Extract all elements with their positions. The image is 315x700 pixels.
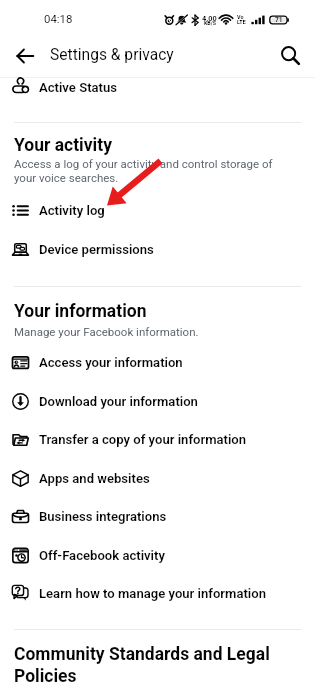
staticText: Access your information — [39, 355, 183, 370]
staticText: Your information — [14, 301, 147, 322]
button[interactable]: Device permissions — [0, 230, 315, 269]
button[interactable]: Apps and websites — [0, 459, 315, 498]
staticText: Learn how to manage your information — [39, 586, 266, 601]
button[interactable]: Activity log — [0, 191, 315, 230]
staticText: 71 — [275, 16, 283, 24]
staticText: Active Status — [39, 80, 118, 95]
staticText: 04:18 — [44, 12, 73, 25]
staticText: KB/S — [204, 20, 216, 26]
staticText: Business integrations — [39, 509, 167, 524]
button[interactable]: Download your information — [0, 382, 315, 421]
button[interactable]: Access your information — [0, 343, 315, 382]
staticText: Manage your Facebook information. — [14, 325, 199, 338]
staticText: Off-Facebook activity — [39, 548, 165, 563]
button[interactable]: Active Status — [0, 78, 315, 122]
staticText: Activity log — [39, 203, 105, 218]
staticText: Access a log of your activity and contro… — [14, 157, 276, 185]
staticText: Vo — [237, 14, 244, 20]
button[interactable]: Back — [6, 37, 43, 74]
staticText: Settings & privacy — [50, 46, 174, 64]
button[interactable]: Transfer a copy of your information — [0, 420, 315, 459]
staticText: Download your information — [39, 394, 198, 409]
staticText: Device permissions — [39, 242, 154, 257]
staticText: Transfer a copy of your information — [39, 432, 247, 447]
staticText: Community Standards and Legal Policies — [14, 644, 286, 686]
staticText: 4.00 — [202, 14, 217, 23]
staticText: LTE — [237, 19, 246, 25]
staticText: Your activity — [14, 135, 112, 156]
button[interactable]: Learn how to manage your information — [0, 574, 315, 613]
button[interactable]: Off-Facebook activity — [0, 536, 315, 575]
staticText: Apps and websites — [39, 471, 150, 486]
button[interactable]: Search — [272, 37, 309, 74]
button[interactable]: Business integrations — [0, 497, 315, 536]
